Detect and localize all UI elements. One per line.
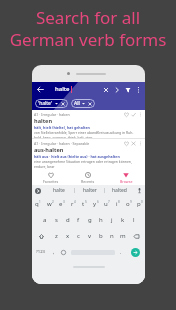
staticText: Search for all German verb forms <box>0 6 176 51</box>
button[interactable]: Favorite <box>123 140 130 147</box>
button[interactable]: A1 · Irregular · haben <box>32 110 145 138</box>
button[interactable]: . <box>116 244 125 260</box>
button[interactable]: Mark known <box>130 111 137 118</box>
staticText: o <box>126 200 130 208</box>
staticText: h <box>99 216 103 224</box>
button[interactable]: Dismiss <box>130 140 137 147</box>
button[interactable]: f <box>73 212 84 228</box>
button[interactable]: s <box>51 212 62 228</box>
button[interactable]: Expand <box>32 185 44 196</box>
button[interactable]: More <box>137 111 144 118</box>
button[interactable]: A1 · Irregular · haben · Separable <box>32 139 145 170</box>
staticText: 'halte' <box>38 100 53 107</box>
staticText: p <box>137 200 141 208</box>
staticText: halten <box>34 117 53 125</box>
button[interactable]: y <box>90 196 101 212</box>
button[interactable]: l <box>128 212 139 228</box>
button[interactable]: Search <box>125 244 145 260</box>
button[interactable]: Emoji <box>58 244 69 260</box>
staticText: hält, hielt (hielte), hat gehalten <box>34 125 90 130</box>
staticText: j <box>111 216 113 224</box>
button[interactable]: j <box>106 212 117 228</box>
button[interactable]: Recents <box>69 170 107 185</box>
button[interactable]: t <box>79 196 90 212</box>
staticText: halted <box>112 187 127 194</box>
button[interactable]: All <box>71 99 95 108</box>
staticText: hold, keep, suppose, think, halt, stop <box>34 135 93 138</box>
button[interactable]: z <box>50 228 62 244</box>
button[interactable]: halted <box>105 185 134 196</box>
staticText: m <box>120 232 126 240</box>
staticText: 9 <box>130 200 132 204</box>
button[interactable]: n <box>106 228 117 244</box>
staticText: Recents <box>81 179 95 184</box>
button[interactable]: k <box>117 212 128 228</box>
button[interactable]: v <box>84 228 95 244</box>
staticText: n <box>110 232 114 240</box>
staticText: 0 <box>141 200 143 204</box>
button[interactable]: w <box>44 196 56 212</box>
button[interactable]: g <box>84 212 95 228</box>
staticText: d <box>66 216 70 224</box>
staticText: l <box>133 216 135 224</box>
staticText: 4 <box>74 200 76 204</box>
staticText: f <box>77 216 80 224</box>
button[interactable]: a <box>39 212 51 228</box>
staticText: b <box>99 232 103 240</box>
button[interactable]: i <box>112 196 123 212</box>
button[interactable]: u <box>101 196 112 212</box>
staticText: a <box>43 216 47 224</box>
staticText: 7 <box>108 200 110 204</box>
staticText: Favorites <box>43 179 59 184</box>
staticText: halter <box>83 187 97 194</box>
button[interactable]: Backspace <box>128 228 145 244</box>
staticText: hält aus · hielt aus (hielte aus) · hat … <box>34 154 120 159</box>
staticText: halte <box>55 85 70 93</box>
staticText: c <box>77 232 80 240</box>
button[interactable]: m <box>117 228 128 244</box>
staticText: k <box>121 216 125 224</box>
button[interactable]: ?123 <box>32 244 49 260</box>
staticText: v <box>88 232 92 240</box>
staticText: 3 <box>63 200 65 204</box>
staticText: 2 <box>52 200 54 204</box>
button[interactable]: r <box>68 196 79 212</box>
button[interactable]: Back <box>34 83 46 95</box>
staticText: ?123 <box>36 249 46 255</box>
staticText: 8 <box>118 200 120 204</box>
button[interactable]: More options <box>133 84 144 95</box>
button[interactable]: o <box>123 196 134 212</box>
staticText: von Stelleberanhilde, Sperr einer abandK… <box>34 130 134 135</box>
staticText: A1 · Irregular · haben · Separable <box>34 141 90 146</box>
button[interactable]: b <box>95 228 106 244</box>
button[interactable]: Space <box>69 244 116 260</box>
button[interactable]: Favorite <box>123 111 130 118</box>
button[interactable]: Browse <box>107 170 145 185</box>
staticText: u <box>104 200 108 208</box>
button[interactable]: Favorites <box>32 170 69 185</box>
button[interactable]: x <box>62 228 73 244</box>
staticText: i <box>116 200 118 208</box>
button[interactable]: halter <box>75 185 104 196</box>
staticText: z <box>55 232 58 240</box>
button[interactable]: d <box>62 212 73 228</box>
button[interactable]: , <box>49 244 58 260</box>
staticText: endure, bear <box>34 164 55 169</box>
button[interactable]: More <box>137 140 144 147</box>
button[interactable]: Voice input <box>134 185 145 196</box>
button[interactable]: c <box>73 228 84 244</box>
button[interactable]: Filter <box>122 84 133 95</box>
button[interactable]: Clear <box>100 84 111 95</box>
button[interactable]: Next <box>111 84 122 95</box>
button[interactable]: e <box>56 196 68 212</box>
staticText: Browse <box>120 179 133 184</box>
staticText: All <box>74 100 80 107</box>
button[interactable]: Shift <box>32 228 50 244</box>
button[interactable]: halte <box>44 185 74 196</box>
staticText: e <box>59 200 63 208</box>
button[interactable]: p <box>134 196 145 212</box>
button[interactable]: h <box>95 212 106 228</box>
staticText: w <box>47 200 52 208</box>
button[interactable]: q <box>32 196 44 212</box>
button[interactable]: 'halte' <box>35 99 68 108</box>
